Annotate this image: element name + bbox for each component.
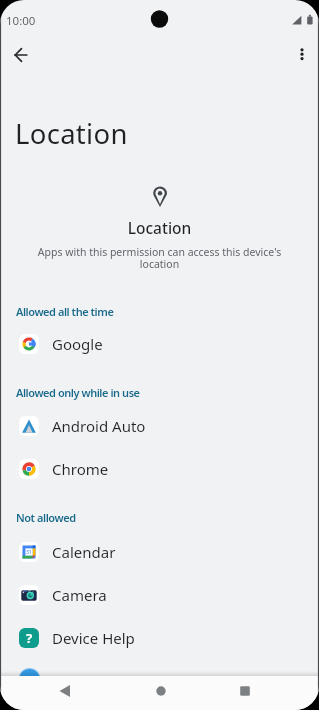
staticText: Android Auto <box>52 416 146 436</box>
button[interactable]: Android Auto <box>0 404 319 447</box>
staticText: Location <box>0 217 319 238</box>
button[interactable]: Google <box>0 322 319 365</box>
button[interactable]: ? <box>0 616 319 659</box>
staticText: Apps with this permission can access thi… <box>0 245 319 271</box>
staticText: Device Help <box>52 628 135 648</box>
staticText: 31 <box>26 549 32 556</box>
button[interactable]: 31 <box>0 530 319 573</box>
button[interactable] <box>147 677 175 705</box>
staticText: 10:00 <box>6 13 36 29</box>
button[interactable] <box>51 677 79 705</box>
button[interactable]: Camera <box>0 573 319 616</box>
staticText: Calendar <box>52 542 116 562</box>
button[interactable] <box>288 40 316 68</box>
staticText: ? <box>26 629 33 647</box>
staticText: Google <box>52 334 103 354</box>
staticText: Allowed only while in use <box>16 385 140 400</box>
staticText: Camera <box>52 585 107 605</box>
staticText: Chrome <box>52 459 109 479</box>
staticText: Allowed all the time <box>16 304 114 319</box>
button[interactable] <box>6 40 36 70</box>
staticText: Location <box>15 115 128 152</box>
button[interactable]: Chrome <box>0 447 319 490</box>
staticText: Not allowed <box>16 510 76 525</box>
button[interactable] <box>231 677 259 705</box>
